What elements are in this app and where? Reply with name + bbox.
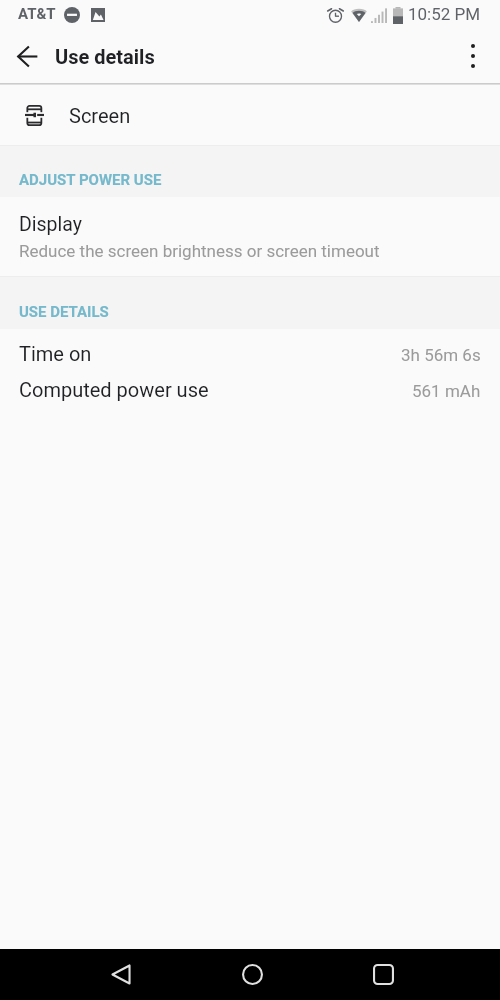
staticText: Screen [69,104,131,127]
button[interactable]: Display [0,197,500,276]
staticText: Time on [19,342,92,365]
staticText: 10:52 PM [408,4,481,24]
button[interactable]: Screen [0,85,500,145]
button[interactable]: Computed power use [0,365,500,401]
staticText: Display [19,213,82,236]
staticText: 561 mAh [412,381,481,401]
button[interactable]: More options [449,32,497,80]
button[interactable]: Time on [0,329,500,365]
staticText: ADJUST POWER USE [19,171,162,189]
button[interactable]: Navigate up [3,32,51,80]
button[interactable]: Back [97,949,144,1000]
button[interactable]: Recent apps [360,949,407,1000]
staticText: 3h 56m 6s [401,345,481,365]
button[interactable]: Home [229,949,276,1000]
staticText: Computed power use [19,378,209,401]
staticText: USE DETAILS [19,303,109,321]
staticText: Use details [55,45,155,68]
staticText: AT&T [18,5,56,23]
staticText: Reduce the screen brightness or screen t… [19,241,380,261]
